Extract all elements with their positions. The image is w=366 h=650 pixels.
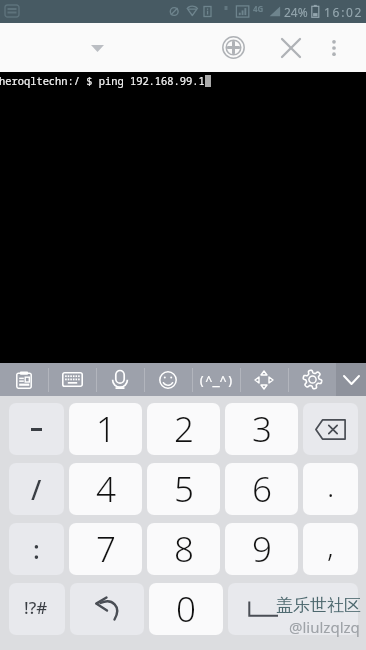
button[interactable]: Backspace	[303, 403, 358, 455]
button[interactable]: Keyboard layout	[48, 363, 96, 396]
button[interactable]: Clipboard	[0, 363, 48, 396]
staticText: !?#	[24, 596, 48, 619]
button[interactable]: Emoticons	[192, 363, 240, 396]
staticText: (^_^)	[198, 372, 235, 388]
button[interactable]: 9	[225, 523, 298, 575]
button[interactable]: 8	[147, 523, 220, 575]
button[interactable]: 2	[147, 403, 220, 455]
button[interactable]: 0	[149, 583, 223, 635]
staticText: 6	[252, 465, 272, 513]
button[interactable]: Close session	[272, 29, 309, 66]
staticText: 盖乐世社区	[276, 595, 361, 616]
staticText: 4G	[253, 3, 264, 14]
staticText: 3	[252, 405, 272, 453]
button[interactable]: /	[9, 463, 64, 515]
staticText: 2	[174, 405, 194, 453]
button[interactable]: Hide keyboard	[336, 363, 366, 396]
button[interactable]: .	[303, 463, 358, 515]
button[interactable]: Undo	[70, 583, 144, 635]
button[interactable]: Enter	[228, 583, 358, 635]
staticText: :	[33, 532, 40, 566]
staticText: @liulzqlzq	[289, 617, 360, 637]
staticText: 5	[174, 465, 194, 513]
button[interactable]: 3	[225, 403, 298, 455]
staticText: 4	[96, 465, 116, 513]
button[interactable]: 5	[147, 463, 220, 515]
button[interactable]: Choose session	[79, 30, 115, 66]
button[interactable]: ,	[303, 523, 358, 575]
staticText: ,	[327, 525, 334, 566]
staticText: 7	[96, 525, 116, 573]
staticText: 24%	[284, 4, 308, 20]
staticText: .	[327, 465, 335, 506]
staticText: heroqltechn:/ $ ping 192.168.99.1	[0, 74, 205, 88]
button[interactable]: New session	[215, 29, 252, 66]
button[interactable]: Voice input	[96, 363, 144, 396]
button[interactable]: Move cursor	[240, 363, 288, 396]
button[interactable]: Emoji	[144, 363, 192, 396]
button[interactable]: Settings	[288, 363, 336, 396]
staticText: 9	[252, 525, 272, 573]
button[interactable]: 1	[69, 403, 142, 455]
staticText: 1	[96, 405, 116, 453]
button[interactable]: !?#	[9, 583, 65, 635]
staticText: 0	[176, 585, 196, 633]
button[interactable]: :	[9, 523, 64, 575]
button[interactable]: 7	[69, 523, 142, 575]
staticText: /	[31, 471, 42, 508]
button[interactable]: 6	[225, 463, 298, 515]
button[interactable]: More options	[318, 32, 349, 63]
staticText: 16:02	[324, 4, 364, 20]
staticText: 8	[174, 525, 194, 573]
button[interactable]: 4	[69, 463, 142, 515]
button[interactable]: -	[9, 403, 64, 455]
